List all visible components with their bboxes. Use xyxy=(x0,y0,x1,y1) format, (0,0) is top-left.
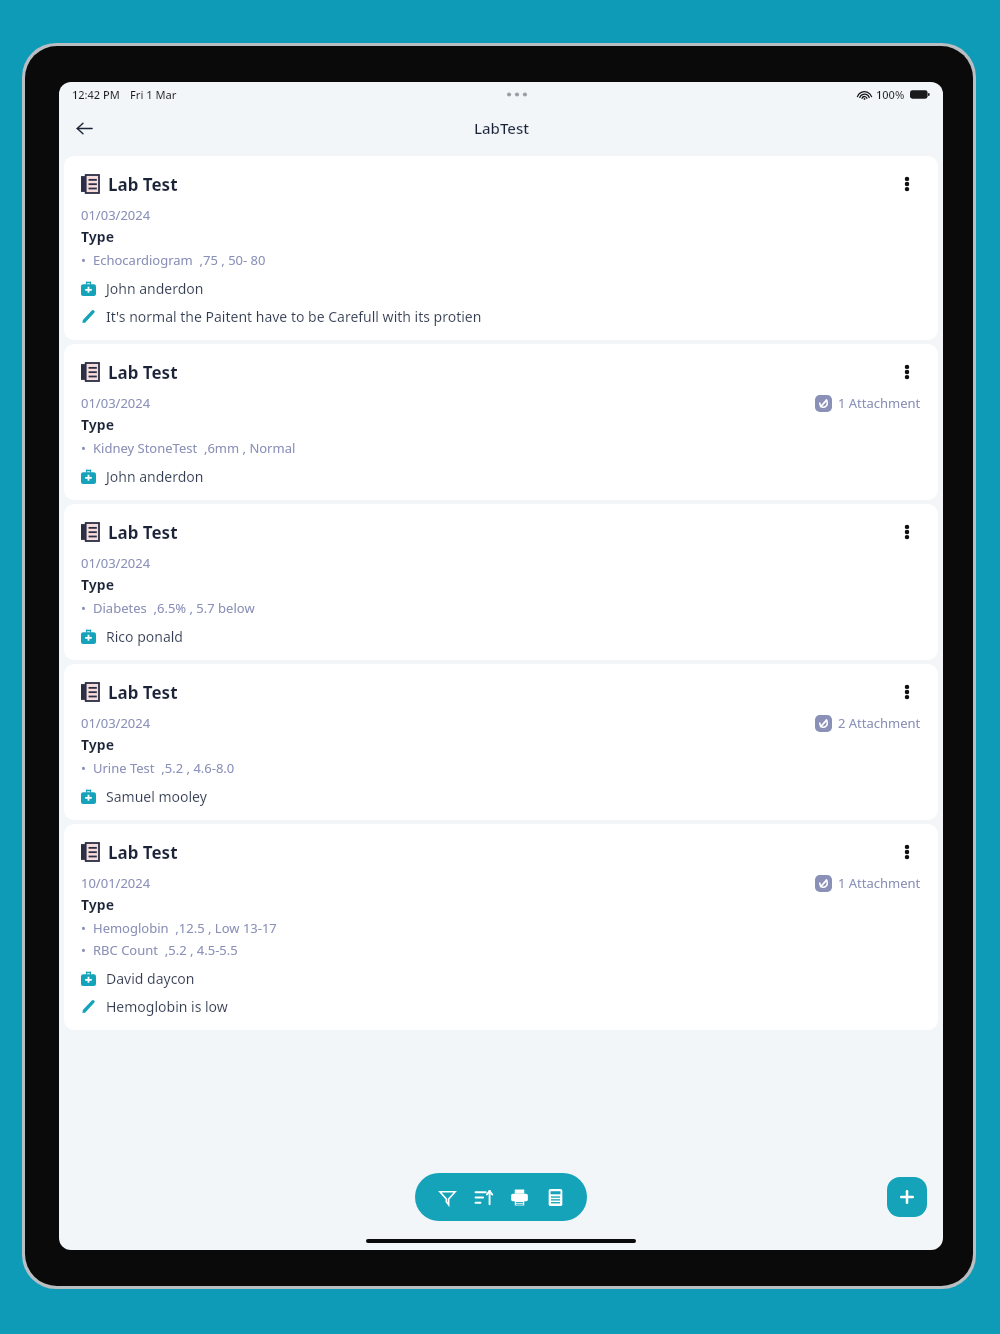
button[interactable]: Lab Test xyxy=(64,824,938,1030)
staticText: RBC Count ,5.2 , 4.5-5.5 xyxy=(93,941,238,959)
staticText: Lab Test xyxy=(108,361,178,384)
staticText: 12:42 PM xyxy=(72,87,120,102)
button[interactable]: More options xyxy=(893,170,921,198)
button[interactable]: 2 Attachment xyxy=(815,714,921,732)
button[interactable]: 1 Attachment xyxy=(815,394,921,412)
staticText: 1 Attachment xyxy=(838,394,921,412)
staticText: David daycon xyxy=(106,969,195,988)
button[interactable]: Add lab test xyxy=(887,1177,927,1217)
staticText: Type xyxy=(81,227,114,246)
staticText: Diabetes ,6.5% , 5.7 below xyxy=(93,599,255,617)
button[interactable]: 1 Attachment xyxy=(815,874,921,892)
button[interactable]: Filter xyxy=(432,1182,462,1212)
staticText: Lab Test xyxy=(108,521,178,544)
staticText: Fri 1 Mar xyxy=(130,87,177,102)
button[interactable]: Sort xyxy=(468,1182,498,1212)
staticText: • xyxy=(81,251,86,269)
staticText: Lab Test xyxy=(108,841,178,864)
staticText: • xyxy=(81,599,86,617)
staticText: Type xyxy=(81,895,114,914)
staticText: 1 Attachment xyxy=(838,874,921,892)
button[interactable]: More options xyxy=(893,358,921,386)
button[interactable]: Lab Test xyxy=(64,156,938,340)
staticText: • xyxy=(81,919,86,937)
button[interactable]: More options xyxy=(893,678,921,706)
button[interactable]: More options xyxy=(893,838,921,866)
staticText: Type xyxy=(81,415,114,434)
staticText: 01/03/2024 xyxy=(81,554,151,572)
staticText: Hemoglobin is low xyxy=(106,997,228,1016)
staticText: 01/03/2024 xyxy=(81,714,151,732)
staticText: 10/01/2024 xyxy=(81,874,151,892)
staticText: Hemoglobin ,12.5 , Low 13-17 xyxy=(93,919,277,937)
button[interactable]: Lab Test xyxy=(64,344,938,500)
staticText: 01/03/2024 xyxy=(81,394,151,412)
staticText: John anderdon xyxy=(106,467,204,486)
staticText: • xyxy=(81,439,86,457)
staticText: • xyxy=(81,941,86,959)
staticText: Lab Test xyxy=(108,173,178,196)
staticText: Rico ponald xyxy=(106,627,183,646)
staticText: It's normal the Paitent have to be Caref… xyxy=(106,307,482,326)
staticText: Kidney StoneTest ,6mm , Normal xyxy=(93,439,296,457)
button[interactable]: Lab Test xyxy=(64,504,938,660)
button[interactable]: Export PDF xyxy=(540,1182,570,1212)
button[interactable]: Back xyxy=(67,111,101,145)
button[interactable]: Lab Test xyxy=(64,664,938,820)
staticText: 01/03/2024 xyxy=(81,206,151,224)
staticText: 2 Attachment xyxy=(838,714,921,732)
staticText: Samuel mooley xyxy=(106,787,207,806)
staticText: John anderdon xyxy=(106,279,204,298)
staticText: Type xyxy=(81,575,114,594)
staticText: • xyxy=(81,759,86,777)
staticText: LabTest xyxy=(474,118,529,138)
staticText: Type xyxy=(81,735,114,754)
staticText: 100% xyxy=(876,87,905,102)
button[interactable]: More options xyxy=(893,518,921,546)
staticText: Echocardiogram ,75 , 50- 80 xyxy=(93,251,266,269)
staticText: Urine Test ,5.2 , 4.6-8.0 xyxy=(93,759,235,777)
button[interactable]: Print xyxy=(504,1182,534,1212)
staticText: Lab Test xyxy=(108,681,178,704)
